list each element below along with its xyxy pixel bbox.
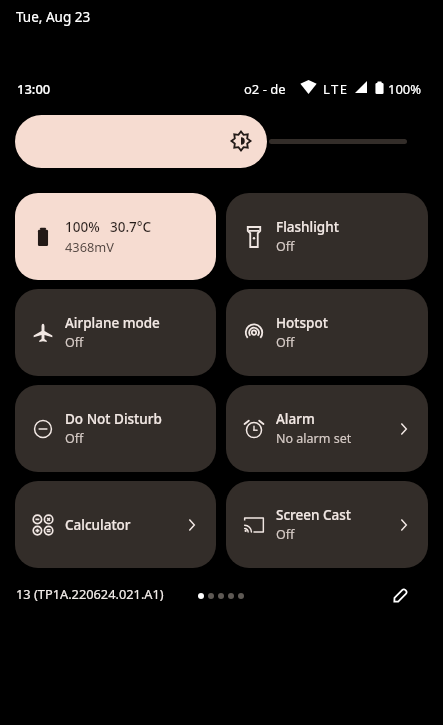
button[interactable]: Edit tiles bbox=[385, 583, 415, 609]
button[interactable]: Battery 100 percent, 30.7 degrees, 4368 … bbox=[15, 193, 216, 280]
button[interactable]: Alarm, No alarm set bbox=[226, 385, 428, 472]
staticText: 13:00 bbox=[17, 80, 51, 95]
button[interactable]: Screen Cast, Off bbox=[226, 481, 428, 568]
staticText: No alarm set bbox=[276, 430, 352, 447]
button[interactable]: Calculator bbox=[15, 481, 216, 568]
staticText: Off bbox=[276, 526, 295, 543]
staticText: 4368mV bbox=[65, 238, 114, 255]
staticText: 100% bbox=[65, 218, 100, 236]
button[interactable]: Flashlight, Off bbox=[226, 193, 428, 280]
staticText: Screen Cast bbox=[276, 506, 351, 524]
staticText: Do Not Disturb bbox=[65, 410, 162, 428]
staticText: 30.7°C bbox=[110, 218, 152, 236]
staticText: Off bbox=[276, 238, 295, 255]
staticText: Alarm bbox=[276, 410, 315, 428]
button[interactable]: Do Not Disturb, Off bbox=[15, 385, 216, 472]
staticText: Hotspot bbox=[276, 314, 328, 332]
staticText: o2 - de bbox=[244, 80, 286, 95]
staticText: 100% bbox=[388, 80, 422, 95]
staticText: Tue, Aug 23 bbox=[16, 8, 91, 26]
staticText: Airplane mode bbox=[65, 314, 160, 332]
button[interactable]: Hotspot, Off bbox=[226, 289, 428, 376]
button[interactable]: Airplane mode, Off bbox=[15, 289, 216, 376]
button[interactable]: Brightness bbox=[15, 115, 267, 168]
staticText: LTE bbox=[323, 80, 349, 95]
staticText: 13 (TP1A.220624.021.A1) bbox=[16, 585, 164, 602]
staticText: Off bbox=[65, 430, 84, 447]
staticText: Off bbox=[65, 334, 84, 351]
staticText: Calculator bbox=[65, 516, 131, 534]
staticText: Flashlight bbox=[276, 218, 339, 236]
staticText: Off bbox=[276, 334, 295, 351]
